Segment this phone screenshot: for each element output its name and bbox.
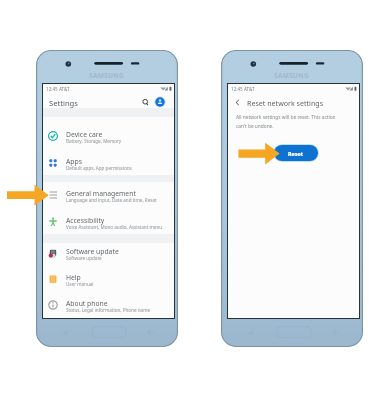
button[interactable]: Settings — [43, 94, 174, 111]
staticText: Battery, Storage, Memory — [66, 138, 122, 144]
button[interactable]: Help — [43, 265, 174, 289]
staticText: Voice Assistant, Mono audio, Assistant m… — [66, 224, 163, 230]
staticText: Language and input, Date and time, Reset — [66, 197, 157, 203]
staticText: General management — [66, 189, 136, 198]
button[interactable]: Software update — [43, 239, 174, 263]
staticText: Settings — [49, 98, 78, 108]
staticText: SAMSUNG — [274, 71, 310, 80]
staticText: Software update — [66, 247, 119, 256]
staticText: Software update — [66, 255, 102, 261]
staticText: 12:45 AT&T — [231, 86, 255, 92]
button[interactable]: Device care — [43, 122, 174, 146]
staticText: Reset network settings — [247, 98, 324, 108]
button[interactable]: Accessibility — [43, 208, 174, 232]
button[interactable]: Account — [153, 95, 167, 109]
staticText: Accessibility — [66, 216, 105, 225]
staticText: About phone — [66, 299, 108, 308]
button[interactable]: Back — [231, 96, 244, 109]
button[interactable]: General management — [43, 181, 174, 205]
staticText: All network settings will be reset. This… — [236, 114, 336, 129]
staticText: SAMSUNG — [89, 71, 125, 80]
button[interactable]: About phone — [43, 291, 174, 315]
button[interactable]: Reset network settings — [228, 94, 359, 111]
staticText: Reset — [288, 150, 304, 157]
staticText: Help — [66, 273, 81, 282]
staticText: Status, Legal information, Phone name — [66, 307, 151, 313]
button[interactable]: Reset — [274, 145, 318, 161]
staticText: Default apps, App permissions — [66, 165, 132, 171]
staticText: 12:45 AT&T — [46, 86, 70, 92]
staticText: User manual — [66, 281, 94, 287]
staticText: Apps — [66, 157, 82, 166]
button[interactable]: Apps — [43, 149, 174, 173]
staticText: Device care — [66, 130, 103, 139]
button[interactable]: Search — [138, 95, 152, 109]
